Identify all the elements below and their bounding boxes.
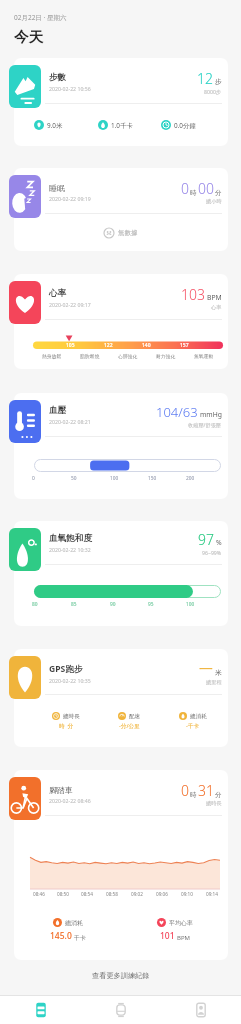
other: 血氧飽和度 <box>9 528 41 571</box>
staticText: 2020-02-22 09:17 <box>49 301 91 308</box>
staticText: BPM <box>207 293 222 302</box>
other: GPS跑步 <box>9 656 41 699</box>
staticText: 85 <box>71 601 77 608</box>
other: 步數 <box>9 65 41 108</box>
staticText: 千卡 <box>74 934 86 942</box>
staticText: 145.0 <box>50 930 72 942</box>
staticText: 時 <box>190 189 197 197</box>
staticText: 80 <box>32 601 38 608</box>
staticText: 09:14 <box>206 891 218 897</box>
staticText: 無數據 <box>118 229 138 237</box>
staticText: 08:54 <box>81 891 93 897</box>
staticText: 總時長 <box>63 713 80 720</box>
staticText: 103 <box>181 285 205 304</box>
staticText: 時 <box>190 791 197 799</box>
staticText: 熱身放鬆 <box>42 353 62 359</box>
staticText: 一 <box>199 661 213 679</box>
staticText: 0 <box>32 475 35 482</box>
staticText: 總小時 <box>206 198 222 205</box>
staticText: 時 分 <box>59 722 74 730</box>
staticText: 157 <box>180 342 189 349</box>
other: 睡眠 <box>9 175 41 218</box>
staticText: 心率 <box>211 304 222 311</box>
staticText: 50 <box>71 475 77 482</box>
staticText: 97 <box>198 530 214 549</box>
other: 心率 <box>9 281 41 324</box>
button[interactable]: 查看更多訓練紀錄 <box>92 971 150 980</box>
staticText: 00 <box>198 179 214 198</box>
staticText: 09:06 <box>156 891 168 897</box>
button[interactable]: 血壓 <box>14 393 228 499</box>
staticText: 96~99% <box>202 549 222 556</box>
staticText: 米 <box>215 668 222 677</box>
staticText: 今天 <box>14 28 43 46</box>
staticText: 收縮壓/舒張壓 <box>188 421 222 428</box>
staticText: 2020-02-22 10:32 <box>49 546 91 553</box>
staticText: 睡眠 <box>49 183 65 193</box>
staticText: % <box>216 538 222 547</box>
other: 腳踏車 <box>9 777 41 820</box>
staticText: BPM <box>177 934 190 942</box>
staticText: 2020-02-22 10:35 <box>49 677 91 684</box>
staticText: 90 <box>110 601 116 608</box>
button[interactable]: GPS跑步 <box>14 649 228 747</box>
staticText: -千卡 <box>186 722 199 730</box>
staticText: 耐力強化 <box>156 353 176 359</box>
staticText: 02月22日 · 星期六 <box>14 13 67 22</box>
staticText: 101 <box>160 930 175 942</box>
button[interactable]: 裝置 <box>81 996 161 1024</box>
staticText: 100 <box>110 475 119 482</box>
button[interactable]: 睡眠 <box>14 168 228 251</box>
staticText: 200 <box>186 475 195 482</box>
staticText: 104/63 <box>156 403 198 421</box>
staticText: 0 <box>181 179 189 198</box>
staticText: 步數 <box>49 72 67 83</box>
staticText: 平均心率 <box>169 919 193 927</box>
staticText: 122 <box>104 342 113 349</box>
staticText: 總消耗 <box>190 713 207 720</box>
button[interactable]: 我的 <box>161 996 241 1024</box>
staticText: 配速 <box>129 713 141 720</box>
staticText: 100 <box>186 601 195 608</box>
button[interactable]: 心率 <box>14 274 228 369</box>
staticText: 2020-02-22 10:56 <box>49 85 91 92</box>
staticText: 總時長 <box>206 800 222 807</box>
staticText: 總里程 <box>206 679 222 686</box>
staticText: 血壓 <box>49 405 67 416</box>
staticText: 0.0分鐘 <box>174 121 196 130</box>
button[interactable]: 腳踏車 <box>14 770 228 960</box>
staticText: 2020-02-22 08:46 <box>49 797 91 804</box>
staticText: mmHg <box>200 410 222 419</box>
staticText: 0 <box>181 781 189 800</box>
staticText: 總消耗 <box>65 919 83 927</box>
staticText: 1.0千卡 <box>111 121 133 130</box>
staticText: 08:50 <box>57 891 69 897</box>
staticText: 9.0米 <box>47 121 63 130</box>
staticText: 8000步 <box>204 88 222 95</box>
staticText: 95 <box>148 601 154 608</box>
button[interactable]: 步數 <box>14 58 228 146</box>
staticText: 脂肪燃燒 <box>80 353 100 359</box>
staticText: 105 <box>66 342 75 349</box>
staticText: 分 <box>215 791 222 799</box>
staticText: 步 <box>215 77 222 86</box>
staticText: 09:02 <box>131 891 143 897</box>
staticText: 08:58 <box>106 891 118 897</box>
staticText: 140 <box>142 342 151 349</box>
staticText: 31 <box>198 781 214 800</box>
staticText: 心肺強化 <box>118 353 138 359</box>
staticText: 腳踏車 <box>49 785 73 795</box>
staticText: 08:46 <box>33 891 45 897</box>
staticText: GPS跑步 <box>49 663 83 675</box>
staticText: -分/公里 <box>119 722 140 730</box>
button[interactable]: 健康紀錄 <box>0 996 81 1024</box>
staticText: 分 <box>215 189 222 197</box>
staticText: 無氧運動 <box>194 353 214 359</box>
button[interactable]: 血氧飽和度 <box>14 521 228 626</box>
other: 血壓 <box>9 400 41 443</box>
staticText: 12 <box>197 69 213 88</box>
staticText: 150 <box>148 475 157 482</box>
staticText: 2020-02-22 08:21 <box>49 418 91 425</box>
staticText: 血氧飽和度 <box>49 533 92 544</box>
staticText: 2020-02-22 09:19 <box>49 195 91 202</box>
